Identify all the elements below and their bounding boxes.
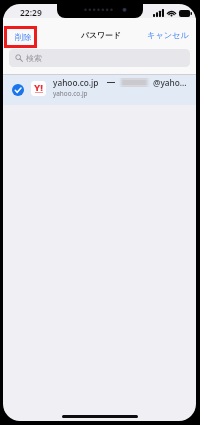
staticText: Y! — [34, 81, 43, 94]
staticText: @yaho... — [153, 77, 187, 88]
button[interactable]: キャンセル — [143, 26, 193, 44]
button[interactable]: Y! — [3, 75, 196, 105]
staticText: キャンセル — [147, 30, 189, 40]
button[interactable]: 検索 — [9, 49, 190, 67]
staticText: 検索 — [26, 53, 42, 63]
staticText: yahoo.co.jp — [53, 89, 88, 98]
staticText: 22:29 — [20, 7, 42, 19]
staticText: yahoo.co.jp — [53, 77, 99, 88]
staticText: 削除 — [15, 32, 32, 42]
staticText: パスワード — [81, 30, 121, 40]
button[interactable]: 削除 — [4, 26, 37, 48]
